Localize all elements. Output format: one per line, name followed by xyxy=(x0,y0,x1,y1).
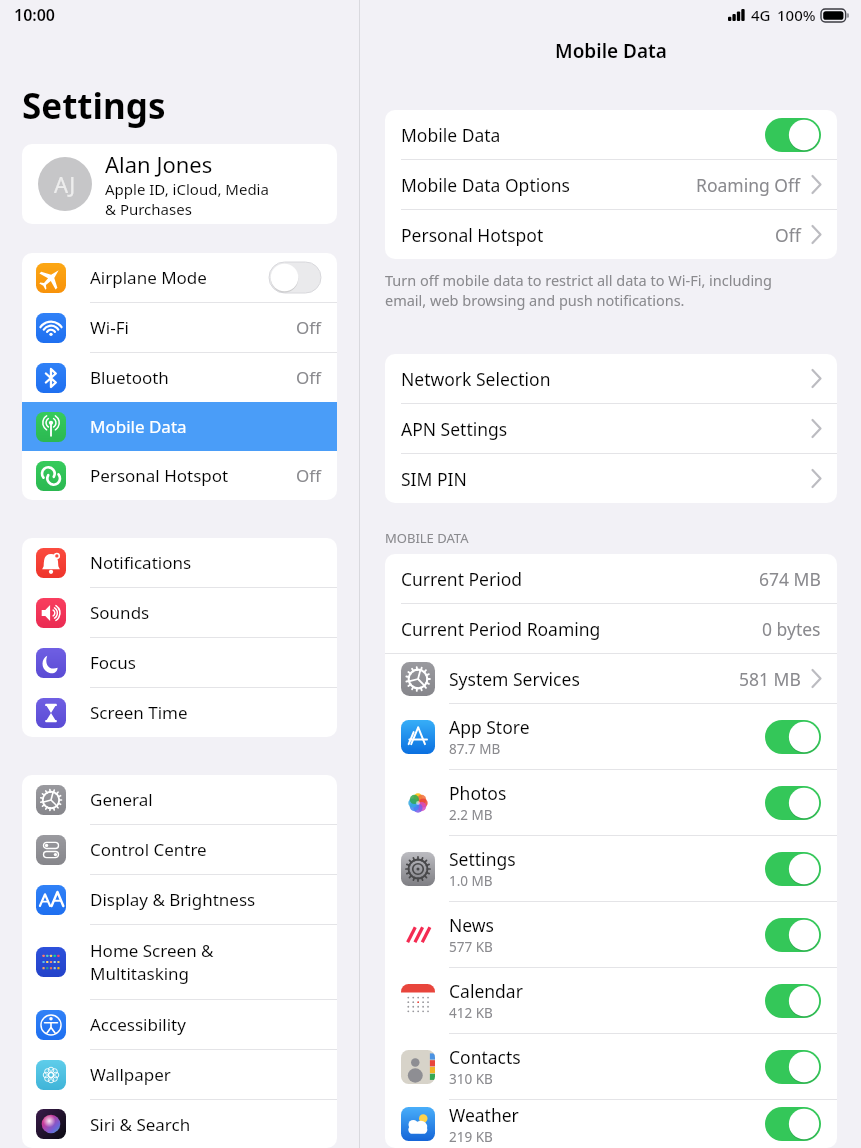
button[interactable]: Settings xyxy=(385,836,837,901)
staticText: Contacts xyxy=(449,1045,521,1069)
staticText: News xyxy=(449,913,494,937)
staticText: Sounds xyxy=(90,601,150,624)
button[interactable]: Current Period Roaming xyxy=(385,604,837,653)
button[interactable]: Sounds xyxy=(22,588,337,637)
staticText: Alan Jones xyxy=(105,149,213,179)
button[interactable]: Display & Brightness xyxy=(22,875,337,924)
button[interactable]: Current Period xyxy=(385,554,837,603)
button[interactable]: Switch on xyxy=(765,786,821,820)
staticText: 0 bytes xyxy=(762,617,821,641)
button[interactable]: General xyxy=(22,775,337,824)
button[interactable]: Accessibility xyxy=(22,1000,337,1049)
staticText: SIM PIN xyxy=(401,467,467,491)
staticText: Settings xyxy=(22,82,166,130)
staticText: Airplane Mode xyxy=(90,266,207,289)
staticText: Wallpaper xyxy=(90,1063,171,1086)
staticText: Roaming Off xyxy=(696,173,801,197)
button[interactable]: Bluetooth xyxy=(22,353,337,402)
button[interactable]: Screen Time xyxy=(22,688,337,737)
button[interactable]: Personal Hotspot xyxy=(385,210,837,259)
staticText: 1.0 MB xyxy=(449,872,493,890)
staticText: 4G xyxy=(751,5,771,25)
staticText: 100% xyxy=(777,5,816,25)
button[interactable]: Mobile Data Options xyxy=(385,160,837,209)
button[interactable]: Focus xyxy=(22,638,337,687)
staticText: Mobile Data xyxy=(555,38,667,64)
staticText: 2.2 MB xyxy=(449,806,493,824)
staticText: System Services xyxy=(449,667,580,691)
button[interactable]: Personal Hotspot xyxy=(22,451,337,500)
button[interactable]: Switch on xyxy=(765,1050,821,1084)
staticText: Wi-Fi xyxy=(90,316,129,339)
staticText: email, web browsing and push notificatio… xyxy=(385,290,685,310)
staticText: AJ xyxy=(54,169,76,199)
staticText: Current Period xyxy=(401,567,523,591)
staticText: 310 KB xyxy=(449,1070,493,1088)
button[interactable]: Airplane Mode xyxy=(22,253,337,302)
button[interactable]: Switch on xyxy=(765,852,821,886)
staticText: 412 KB xyxy=(449,1004,493,1022)
button[interactable]: Switch on xyxy=(765,118,821,152)
staticText: Off xyxy=(296,464,321,487)
button[interactable]: Control Centre xyxy=(22,825,337,874)
staticText: Personal Hotspot xyxy=(401,223,544,247)
staticText: Turn off mobile data to restrict all dat… xyxy=(385,270,773,290)
staticText: 577 KB xyxy=(449,938,493,956)
staticText: 581 MB xyxy=(739,667,801,691)
staticText: 10:00 xyxy=(14,4,56,26)
staticText: Weather xyxy=(449,1103,519,1127)
staticText: MOBILE DATA xyxy=(385,529,469,547)
button[interactable]: Mobile Data xyxy=(385,110,837,159)
button[interactable]: Siri & Search xyxy=(22,1100,337,1148)
button[interactable]: Wi-Fi xyxy=(22,303,337,352)
button[interactable]: Wallpaper xyxy=(22,1050,337,1099)
staticText: Multitasking xyxy=(90,962,190,985)
button[interactable]: Switch on xyxy=(765,918,821,952)
staticText: Apple ID, iCloud, Media xyxy=(105,179,269,199)
button[interactable]: System Services xyxy=(385,654,837,703)
button[interactable]: Switch on xyxy=(765,984,821,1018)
button[interactable]: Notifications xyxy=(22,538,337,587)
staticText: Siri & Search xyxy=(90,1113,191,1136)
staticText: Off xyxy=(296,366,321,389)
staticText: Home Screen & xyxy=(90,939,214,962)
staticText: Off xyxy=(296,316,321,339)
staticText: 87.7 MB xyxy=(449,740,501,758)
button[interactable]: Home Screen & xyxy=(22,925,337,999)
button[interactable]: Switch on xyxy=(765,720,821,754)
staticText: Settings xyxy=(449,847,516,871)
staticText: Mobile Data xyxy=(90,415,187,438)
staticText: 219 KB xyxy=(449,1128,493,1146)
button[interactable]: Switch on xyxy=(765,1107,821,1141)
staticText: Calendar xyxy=(449,979,523,1003)
staticText: Network Selection xyxy=(401,367,551,391)
staticText: Accessibility xyxy=(90,1013,186,1036)
staticText: Screen Time xyxy=(90,701,188,724)
button[interactable]: SIM PIN xyxy=(385,454,837,503)
button[interactable]: App Store xyxy=(385,704,837,769)
staticText: APN Settings xyxy=(401,417,508,441)
staticText: App Store xyxy=(449,715,530,739)
button[interactable]: Network Selection xyxy=(385,354,837,403)
staticText: Mobile Data xyxy=(401,123,501,147)
staticText: Photos xyxy=(449,781,507,805)
button[interactable]: Contacts xyxy=(385,1034,837,1099)
staticText: & Purchases xyxy=(105,199,192,219)
button[interactable]: Switch off xyxy=(269,262,321,293)
button[interactable]: News xyxy=(385,902,837,967)
button[interactable]: Mobile Data xyxy=(22,402,337,451)
staticText: Notifications xyxy=(90,551,192,574)
staticText: Off xyxy=(775,223,801,247)
staticText: 674 MB xyxy=(759,567,821,591)
button[interactable]: AJ xyxy=(22,144,337,224)
button[interactable]: Weather xyxy=(385,1100,837,1148)
staticText: Mobile Data Options xyxy=(401,173,570,197)
staticText: General xyxy=(90,788,153,811)
staticText: Display & Brightness xyxy=(90,888,256,911)
button[interactable]: Photos xyxy=(385,770,837,835)
staticText: Current Period Roaming xyxy=(401,617,601,641)
button[interactable]: Calendar xyxy=(385,968,837,1033)
staticText: Personal Hotspot xyxy=(90,464,229,487)
staticText: Focus xyxy=(90,651,136,674)
button[interactable]: APN Settings xyxy=(385,404,837,453)
